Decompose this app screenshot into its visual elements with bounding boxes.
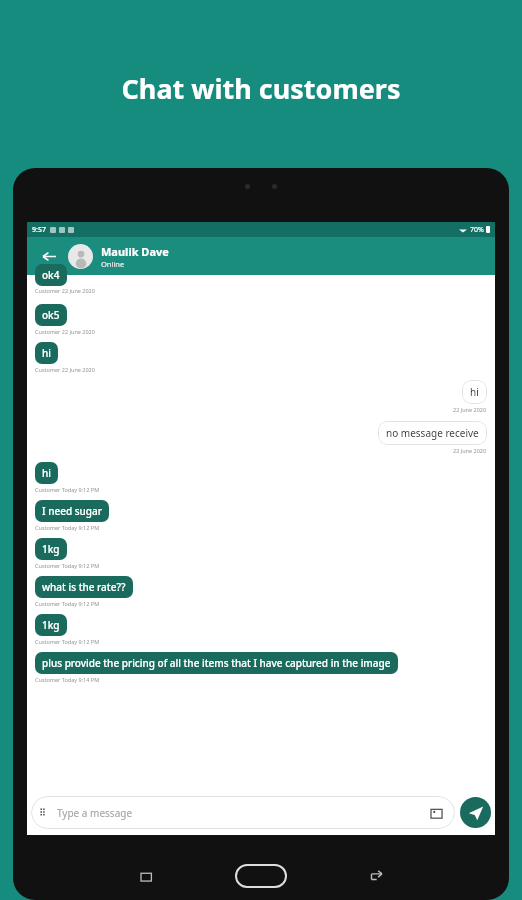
button[interactable]: hi (35, 462, 58, 484)
staticText: Chat with customers (0, 70, 522, 107)
staticText: Customer Today 9:12 PM (35, 562, 100, 569)
button[interactable]: Send (460, 797, 491, 828)
button[interactable]: what is the rate?? (35, 576, 133, 598)
staticText: plus provide the pricing of all the item… (42, 656, 391, 670)
staticText: what is the rate?? (42, 580, 126, 594)
staticText: Customer Today 9:14 PM (35, 676, 100, 683)
staticText: Customer 22 June 2020 (35, 328, 95, 335)
staticText: 9:57 (32, 225, 46, 235)
staticText: 22 June 2020 (453, 406, 487, 413)
staticText: hi (470, 385, 479, 399)
staticText: hi (42, 346, 51, 360)
button[interactable]: Type a message (31, 796, 455, 829)
staticText: Online (101, 259, 125, 269)
staticText: hi (42, 466, 51, 480)
button[interactable]: Attach image (428, 804, 446, 822)
staticText: Customer Today 9:12 PM (35, 638, 100, 645)
staticText: Customer 22 June 2020 (35, 287, 95, 294)
staticText: I need sugar (42, 504, 102, 518)
staticText: Customer Today 9:12 PM (35, 600, 100, 607)
button[interactable]: Recents (125, 854, 169, 898)
staticText: ok5 (42, 308, 60, 322)
staticText: Maulik Dave (101, 244, 169, 259)
staticText: ok4 (42, 268, 60, 282)
button[interactable]: I need sugar (35, 500, 109, 522)
button[interactable]: hi (35, 342, 58, 364)
button[interactable]: ok5 (35, 304, 67, 326)
staticText: Customer 22 June 2020 (35, 366, 95, 373)
button[interactable]: Home (231, 861, 291, 891)
button[interactable]: 1kg (35, 614, 67, 636)
staticText: Customer Today 9:12 PM (35, 524, 100, 531)
button[interactable]: hi (462, 380, 487, 404)
staticText: 22 June 2020 (453, 447, 487, 454)
button[interactable]: plus provide the pricing of all the item… (35, 652, 398, 674)
staticText: 70% (470, 225, 484, 235)
button[interactable]: Back (353, 854, 397, 898)
staticText: 1kg (42, 542, 60, 556)
staticText: 1kg (42, 618, 60, 632)
staticText: no message receive (386, 426, 479, 440)
button[interactable]: 1kg (35, 538, 67, 560)
staticText: Customer Today 9:12 PM (35, 486, 100, 493)
button[interactable]: ok4 (35, 264, 67, 286)
staticText: Type a message (57, 806, 133, 820)
button[interactable]: no message receive (378, 421, 487, 445)
button[interactable]: Back (37, 244, 61, 268)
